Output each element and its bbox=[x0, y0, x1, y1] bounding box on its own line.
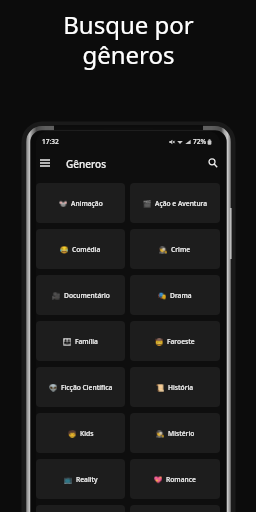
staticText: 📺 bbox=[64, 476, 73, 484]
button[interactable]: 👪 bbox=[36, 321, 125, 361]
staticText: 👽 bbox=[49, 384, 58, 392]
button[interactable]: 👽 bbox=[36, 367, 125, 407]
button[interactable]: 🕵️ bbox=[130, 229, 220, 269]
staticText: Animação bbox=[71, 199, 103, 208]
staticText: Gêneros bbox=[66, 157, 107, 171]
button[interactable]: 🎬 bbox=[130, 183, 220, 223]
staticText: 🕵️ bbox=[156, 430, 165, 438]
button[interactable]: Menu bbox=[36, 154, 54, 172]
staticText: 🕵️ bbox=[159, 246, 168, 254]
staticText: 17:32 bbox=[42, 137, 59, 146]
button[interactable]: 📜 bbox=[130, 367, 220, 407]
button[interactable]: 🤠 bbox=[130, 321, 220, 361]
button[interactable]: 🎭 bbox=[130, 275, 220, 315]
staticText: Drama bbox=[170, 291, 192, 300]
staticText: 📜 bbox=[156, 384, 165, 392]
button[interactable]: 🕵️ bbox=[130, 413, 220, 453]
staticText: Kids bbox=[80, 429, 94, 438]
button[interactable]: 🧒 bbox=[36, 413, 125, 453]
staticText: Reality bbox=[76, 475, 98, 484]
staticText: Ficção Científica bbox=[61, 383, 113, 392]
staticText: Crime bbox=[171, 245, 191, 254]
staticText: Família bbox=[75, 337, 98, 346]
button[interactable]: Search bbox=[204, 154, 220, 172]
staticText: Faroeste bbox=[167, 337, 195, 346]
staticText: Busque por gêneros bbox=[63, 8, 194, 71]
staticText: 72% bbox=[193, 137, 206, 146]
staticText: 🎭 bbox=[158, 292, 167, 300]
staticText: 🤠 bbox=[155, 338, 164, 346]
staticText: 💖 bbox=[154, 476, 163, 484]
staticText: 👪 bbox=[63, 338, 72, 346]
staticText: Romance bbox=[166, 475, 196, 484]
staticText: História bbox=[168, 383, 194, 392]
button[interactable]: 💖 bbox=[130, 459, 220, 499]
button[interactable]: 📺 bbox=[36, 459, 125, 499]
staticText: Ação e Aventura bbox=[155, 199, 208, 208]
button[interactable]: 🎥 bbox=[36, 275, 125, 315]
staticText: 🎥 bbox=[52, 292, 61, 300]
staticText: Documentário bbox=[64, 291, 110, 300]
button[interactable]: 🐭 bbox=[36, 183, 125, 223]
staticText: 🧒 bbox=[68, 430, 77, 438]
staticText: 😂 bbox=[60, 246, 69, 254]
staticText: 🎬 bbox=[143, 200, 152, 208]
button[interactable]: 😂 bbox=[36, 229, 125, 269]
staticText: Mistério bbox=[168, 429, 195, 438]
staticText: 🐭 bbox=[59, 200, 68, 208]
staticText: Comédia bbox=[72, 245, 101, 254]
